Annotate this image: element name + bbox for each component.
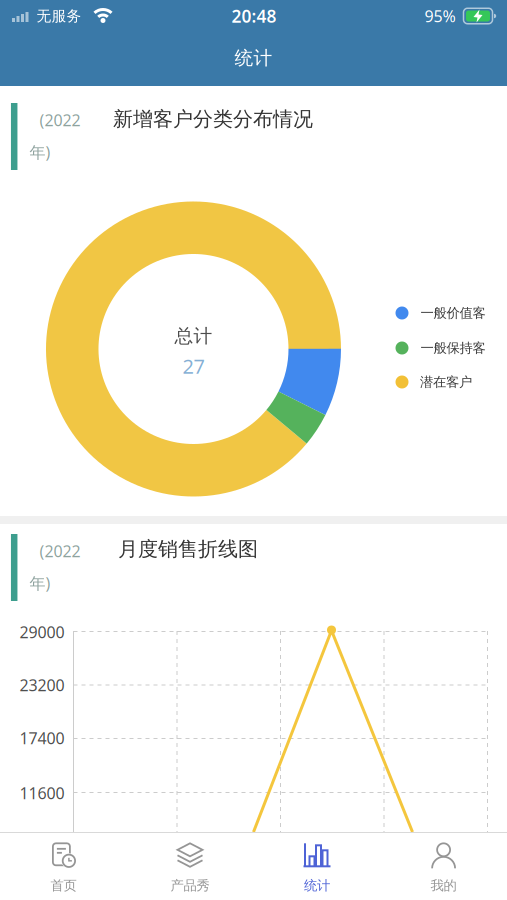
staticText: 20:48	[231, 4, 276, 27]
staticText: 11600	[19, 782, 64, 804]
staticText: 27	[182, 353, 204, 379]
staticText: 23200	[19, 674, 64, 696]
staticText: 95%	[424, 5, 455, 27]
staticText: 我的	[431, 877, 457, 894]
button[interactable]: 统计	[257, 836, 377, 900]
staticText: 年)	[29, 572, 50, 594]
staticText: (2022	[39, 540, 80, 562]
staticText: 年)	[29, 141, 50, 163]
staticText: 新增客户分类分布情况	[113, 107, 313, 131]
staticText: 首页	[50, 877, 76, 894]
staticText: 17400	[19, 727, 64, 749]
staticText: 月度销售折线图	[118, 537, 258, 561]
staticText: 一般价值客	[420, 305, 485, 321]
staticText: (2022	[39, 109, 80, 131]
staticText: 潜在客户	[420, 374, 472, 390]
staticText: 29000	[19, 621, 64, 643]
staticText: 总计	[174, 324, 212, 347]
staticText: 统计	[234, 46, 272, 69]
staticText: 产品秀	[170, 877, 209, 894]
staticText: 无服务	[36, 7, 81, 25]
staticText: 一般保持客	[420, 340, 485, 356]
button[interactable]: 我的	[384, 836, 504, 900]
button[interactable]: 产品秀	[130, 836, 250, 900]
button[interactable]: 首页	[3, 836, 123, 900]
staticText: 统计	[304, 877, 330, 894]
